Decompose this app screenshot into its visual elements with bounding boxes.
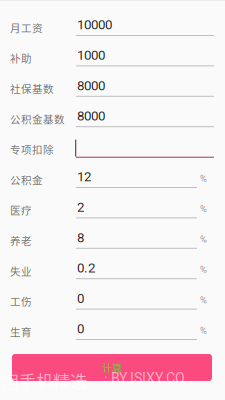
button[interactable]: 公积金基数 <box>0 100 225 131</box>
staticText: 补助 <box>10 50 32 66</box>
button[interactable]: 补助 <box>0 39 225 70</box>
staticText: 0 <box>77 291 84 306</box>
staticText: 公积金基数 <box>10 111 65 126</box>
staticText: 工伤 <box>10 294 32 309</box>
staticText: % <box>200 295 207 305</box>
staticText: 12 <box>77 169 91 185</box>
button[interactable]: 社保基数 <box>0 70 225 100</box>
button[interactable]: 养老 <box>0 222 225 252</box>
staticText: % <box>200 325 207 336</box>
staticText: 2 <box>77 199 84 215</box>
staticText: % <box>200 173 207 184</box>
staticText: % <box>200 203 207 214</box>
staticText: 社保基数 <box>10 81 54 96</box>
button[interactable]: 公积金 <box>0 161 225 191</box>
staticText: 生育 <box>10 324 32 339</box>
button[interactable]: 工伤 <box>0 283 225 313</box>
staticText: 1000 <box>77 47 105 63</box>
staticText: 8000 <box>77 108 105 124</box>
button[interactable]: 医疗 <box>0 191 225 222</box>
staticText: · BY ISIXY.CO <box>104 370 185 386</box>
button[interactable]: 失业 <box>0 252 225 283</box>
staticText: 计算 <box>102 360 122 375</box>
button[interactable]: 专项扣除 <box>0 131 225 161</box>
staticText: 月工资 <box>10 20 43 35</box>
staticText: 8000 <box>77 78 105 93</box>
button[interactable]: 生育 <box>0 313 225 343</box>
staticText: 用手机精选 <box>2 368 87 393</box>
button[interactable]: 计算 <box>12 354 212 381</box>
staticText: 失业 <box>10 263 32 278</box>
staticText: % <box>200 264 207 275</box>
staticText: 公积金 <box>10 172 43 187</box>
staticText: 医疗 <box>10 202 32 218</box>
staticText: 0 <box>77 321 84 337</box>
staticText: 养老 <box>10 233 32 248</box>
staticText: 专项扣除 <box>10 142 54 157</box>
button[interactable]: 月工资 <box>0 9 225 39</box>
staticText: 0.2 <box>77 260 95 276</box>
staticText: % <box>200 234 207 245</box>
staticText: 10000 <box>77 17 112 33</box>
staticText: 8 <box>77 230 84 245</box>
